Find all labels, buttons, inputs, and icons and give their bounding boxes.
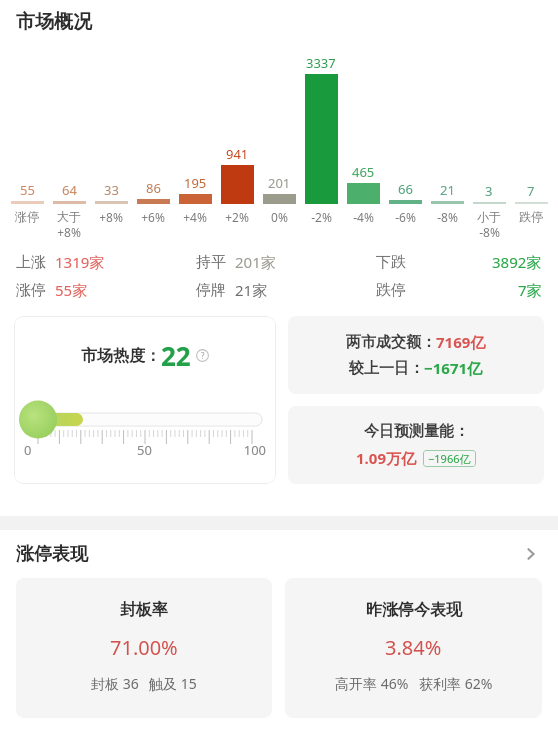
staticText: 55家 xyxy=(55,280,88,300)
button[interactable]: 昨涨停今表现 xyxy=(285,578,542,718)
staticText: 涨停 xyxy=(15,209,39,224)
staticText: 跌停 xyxy=(376,281,406,300)
staticText: 昨涨停今表现 xyxy=(366,600,462,620)
staticText: 465 xyxy=(352,163,375,181)
staticText: -8% xyxy=(437,209,458,225)
staticText: 64 xyxy=(62,181,77,199)
staticText: 1.09万亿 xyxy=(356,448,416,468)
button[interactable]: 今日预测量能： xyxy=(288,406,544,484)
staticText: 封板 36 xyxy=(91,674,139,693)
button[interactable]: 市场热度： xyxy=(14,316,276,484)
staticText: 小于 xyxy=(477,209,501,224)
staticText: 两市成交额： xyxy=(346,333,436,352)
staticText: 市场热度： xyxy=(81,346,161,366)
staticText: 22 xyxy=(161,338,191,373)
staticText: 66 xyxy=(398,180,413,198)
staticText: 7家 xyxy=(518,280,542,300)
staticText: 触及 15 xyxy=(149,674,197,693)
staticText: 下跌 xyxy=(376,253,406,272)
staticText: -6% xyxy=(395,209,416,225)
other: More xyxy=(520,543,542,565)
staticText: 跌停 xyxy=(519,209,543,224)
other: Info xyxy=(196,349,209,362)
staticText: +6% xyxy=(141,209,165,225)
staticText: 较上一日： xyxy=(349,359,424,378)
staticText: -4% xyxy=(353,209,374,225)
staticText: +8% xyxy=(57,224,81,240)
staticText: 大于 xyxy=(57,209,81,224)
staticText: 33 xyxy=(104,181,119,199)
staticText: 持平 xyxy=(196,253,226,272)
staticText: 上涨 xyxy=(16,253,46,272)
staticText: 3.84% xyxy=(385,634,442,661)
staticText: 停牌 xyxy=(196,281,226,300)
staticText: −1671亿 xyxy=(424,358,483,378)
staticText: 86 xyxy=(146,179,161,197)
staticText: 21家 xyxy=(235,280,268,300)
staticText: 市场概况 xyxy=(16,10,92,34)
staticText: 941 xyxy=(226,145,249,163)
staticText: 100 xyxy=(185,441,266,459)
staticText: 3337 xyxy=(306,54,336,72)
staticText: 封板率 xyxy=(120,600,168,620)
staticText: 涨停表现 xyxy=(16,543,88,566)
staticText: -2% xyxy=(311,209,332,225)
staticText: ? xyxy=(201,350,205,361)
button[interactable]: 涨停表现 xyxy=(0,530,558,578)
staticText: 涨停 xyxy=(16,281,46,300)
staticText: 71.00% xyxy=(110,634,178,661)
staticText: +2% xyxy=(225,209,249,225)
staticText: 获利率 62% xyxy=(419,674,493,693)
button[interactable]: 两市成交额： xyxy=(288,316,544,394)
staticText: −1966亿 xyxy=(428,451,471,466)
staticText: 0 xyxy=(24,441,104,459)
staticText: 0% xyxy=(271,209,288,225)
staticText: 7 xyxy=(527,182,535,200)
staticText: 50 xyxy=(104,441,185,459)
staticText: +4% xyxy=(183,209,207,225)
staticText: 今日预测量能： xyxy=(364,422,469,441)
button[interactable]: 封板率 xyxy=(16,578,272,718)
staticText: 201家 xyxy=(235,252,276,272)
staticText: 55 xyxy=(20,181,35,199)
staticText: 3 xyxy=(485,182,493,200)
staticText: 3892家 xyxy=(492,252,542,272)
staticText: 195 xyxy=(184,174,207,192)
staticText: 21 xyxy=(440,181,455,199)
staticText: 201 xyxy=(268,174,291,192)
staticText: 1319家 xyxy=(55,252,105,272)
staticText: +8% xyxy=(99,209,123,225)
staticText: 高开率 46% xyxy=(335,674,409,693)
staticText: -8% xyxy=(479,224,500,240)
staticText: 7169亿 xyxy=(436,332,486,352)
